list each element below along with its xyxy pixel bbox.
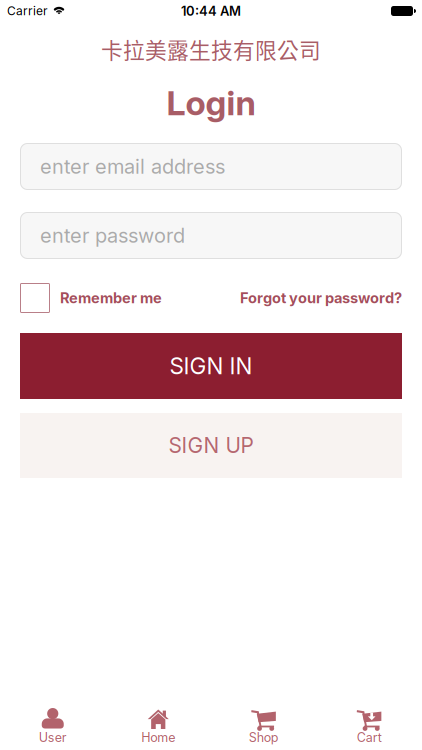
staticText: 10:44 AM (181, 3, 241, 19)
button[interactable]: Forgot your password? (240, 289, 402, 307)
button[interactable]: enter password (20, 212, 402, 259)
button[interactable]: Remember me (20, 283, 162, 313)
button[interactable]: Cart (316, 698, 422, 750)
staticText: SIGN IN (169, 352, 252, 380)
staticText: Shop (249, 730, 279, 745)
staticText: Login (166, 82, 255, 123)
button[interactable]: User (0, 698, 105, 750)
staticText: Carrier (7, 4, 48, 18)
staticText: 卡拉美露生技有限公司 (101, 33, 321, 65)
button[interactable]: Shop (211, 698, 316, 750)
staticText: enter email address (40, 154, 225, 179)
staticText: User (39, 730, 67, 745)
staticText: SIGN UP (168, 433, 253, 458)
staticText: enter password (40, 223, 185, 248)
button[interactable]: enter email address (20, 143, 402, 190)
staticText: Forgot your password? (240, 289, 402, 307)
button[interactable]: SIGN UP (20, 413, 402, 478)
button[interactable]: Home (105, 698, 211, 750)
staticText: Cart (357, 730, 382, 745)
staticText: Remember me (60, 289, 162, 307)
staticText: Home (141, 730, 175, 745)
button[interactable]: SIGN IN (20, 333, 402, 399)
